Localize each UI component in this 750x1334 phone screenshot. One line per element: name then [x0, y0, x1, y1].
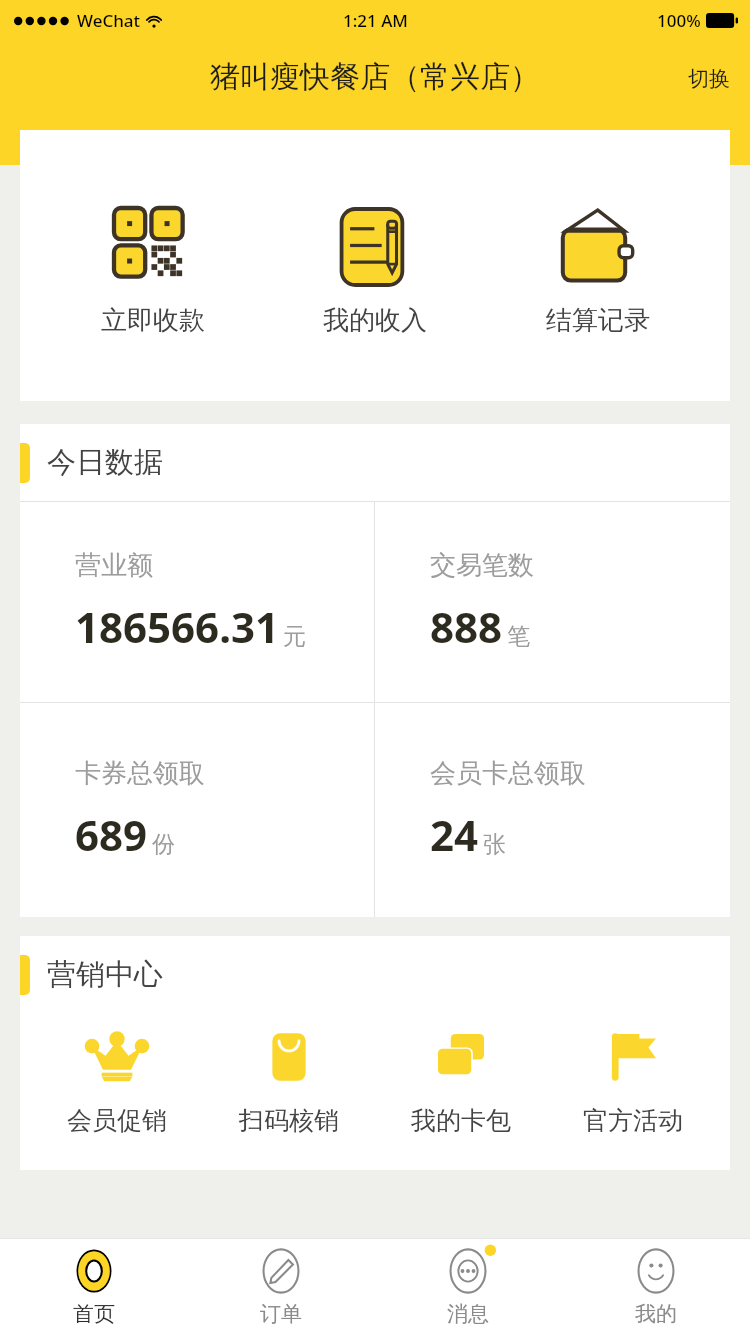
other: 我的收入 — [337, 209, 413, 285]
staticText: 会员卡总领取 — [430, 757, 586, 790]
staticText: 切换 — [688, 66, 730, 92]
button[interactable]: 立即收款 — [63, 200, 243, 341]
other: 结算记录 — [558, 207, 638, 287]
button[interactable]: 扫码核销 — [214, 1017, 364, 1140]
staticText: 1:21 AM — [343, 9, 408, 32]
staticText: 186566.31 — [75, 598, 279, 655]
staticText: 营销中心 — [47, 956, 163, 993]
button[interactable]: 首页 — [0, 1238, 187, 1334]
staticText: 会员促销 — [67, 1105, 167, 1136]
button[interactable]: 订单 — [187, 1238, 374, 1334]
other: 官方活动 — [601, 1025, 665, 1089]
staticText: 我的收入 — [323, 304, 427, 337]
button[interactable]: 官方活动 — [558, 1017, 708, 1140]
staticText: 689 — [75, 806, 148, 863]
staticText: 立即收款 — [101, 304, 205, 337]
staticText: 张 — [483, 830, 506, 859]
button[interactable]: 我的 — [562, 1238, 750, 1334]
staticText: 888 — [430, 598, 503, 655]
staticText: 首页 — [73, 1301, 115, 1327]
button[interactable]: 卡券总领取 — [20, 703, 374, 917]
staticText: 扫码核销 — [239, 1105, 339, 1136]
other: 立即收款 — [114, 208, 192, 286]
staticText: 100% — [657, 9, 701, 32]
staticText: 我的 — [635, 1301, 677, 1327]
other: 扫码核销 — [257, 1025, 321, 1089]
button[interactable]: 交易笔数 — [375, 502, 730, 702]
staticText: 24 — [430, 806, 479, 863]
staticText: 猪叫瘦快餐店（常兴店） — [210, 58, 540, 96]
staticText: 营业额 — [75, 549, 153, 582]
button[interactable]: 我的收入 — [285, 200, 465, 341]
button[interactable]: 结算记录 — [508, 200, 688, 341]
staticText: 元 — [283, 622, 306, 651]
staticText: 订单 — [260, 1301, 302, 1327]
other: 会员促销 — [85, 1025, 149, 1089]
staticText: 卡券总领取 — [75, 757, 205, 790]
staticText: WeChat — [77, 9, 141, 32]
staticText: 消息 — [447, 1301, 489, 1327]
staticText: 交易笔数 — [430, 549, 534, 582]
staticText: 我的卡包 — [411, 1105, 511, 1136]
button[interactable]: 营业额 — [20, 502, 374, 702]
button[interactable]: 我的卡包 — [386, 1017, 536, 1140]
staticText: 份 — [152, 830, 175, 859]
button[interactable]: 切换 — [682, 62, 736, 96]
button[interactable]: 消息 — [374, 1238, 562, 1334]
staticText: 今日数据 — [47, 444, 163, 481]
staticText: 笔 — [507, 622, 530, 651]
button[interactable]: 会员卡总领取 — [375, 703, 730, 917]
staticText: 官方活动 — [583, 1105, 683, 1136]
staticText: 结算记录 — [546, 304, 650, 337]
button[interactable]: 会员促销 — [42, 1017, 192, 1140]
other: 我的卡包 — [429, 1025, 493, 1089]
